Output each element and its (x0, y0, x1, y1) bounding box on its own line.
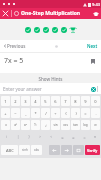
button[interactable]: − (11, 108, 20, 118)
staticText: | (17, 135, 19, 139)
staticText: a² (14, 123, 17, 127)
button[interactable] (25, 27, 31, 33)
button[interactable] (34, 27, 40, 33)
button[interactable]: tan (71, 120, 80, 130)
staticText: Previous (7, 43, 26, 49)
button[interactable]: ( (61, 108, 70, 118)
button[interactable]: + (1, 108, 10, 118)
button[interactable]: 9 (81, 96, 90, 106)
button[interactable]: Move right (61, 145, 72, 155)
staticText: = (84, 111, 87, 116)
button[interactable]: Move left (49, 145, 60, 155)
button[interactable]: One-Step Multiplication (14, 10, 90, 17)
staticText: 3 (24, 99, 27, 104)
button[interactable] (69, 26, 77, 34)
staticText: / (45, 111, 47, 116)
button[interactable]: Backspace (73, 145, 84, 155)
button[interactable]: Verify (85, 145, 100, 155)
button[interactable]: 0 (91, 96, 100, 106)
button[interactable]: ÷ (51, 108, 60, 118)
button[interactable]: = (81, 108, 90, 118)
button[interactable]: Report a problem (90, 8, 101, 19)
staticText: > (39, 135, 41, 139)
staticText: ÷ (54, 111, 57, 116)
button[interactable]: } (24, 132, 34, 142)
staticText: 4 (34, 99, 37, 104)
staticText: xʸ (94, 123, 97, 127)
button[interactable]: x (1, 120, 10, 130)
staticText: 5 (44, 99, 47, 104)
button[interactable]: Next (87, 43, 98, 49)
staticText: 7 (64, 99, 67, 104)
button[interactable]: Bookmark (88, 57, 97, 66)
button[interactable]: aᵇ (21, 120, 30, 130)
button[interactable]: 1 (1, 96, 10, 106)
button[interactable]: log (81, 120, 90, 130)
staticText: ½ (34, 123, 37, 127)
button[interactable]: i (1, 132, 12, 142)
staticText: ≤ (61, 136, 64, 139)
button[interactable]: 6 (51, 96, 60, 106)
button[interactable]: sinh (19, 145, 30, 155)
button[interactable]: √ (41, 120, 50, 130)
staticText: One-Step Multiplication (21, 10, 81, 17)
button[interactable]: 8 (71, 96, 80, 106)
button[interactable]: | (13, 132, 23, 142)
staticText: aᵇ (24, 123, 27, 127)
staticText: ) (75, 111, 77, 116)
staticText: abs (34, 148, 39, 152)
staticText: − (14, 111, 17, 116)
staticText: } (28, 135, 30, 139)
staticText: Show Hints (38, 76, 63, 82)
button[interactable]: Previous (3, 43, 26, 49)
staticText: 1 (4, 99, 7, 104)
button[interactable]: > (35, 132, 45, 142)
staticText: ≥ (72, 136, 75, 139)
staticText: 0 (94, 99, 97, 104)
staticText: ( (65, 111, 67, 116)
button[interactable]: abs (31, 145, 42, 155)
staticText: cos (63, 123, 68, 127)
button[interactable]: ≤ (57, 132, 67, 142)
staticText: 9:43 (92, 2, 100, 7)
button[interactable]: ABC (1, 145, 18, 155)
button[interactable]: * (31, 108, 40, 118)
staticText: 2 (14, 99, 17, 104)
staticText: Next (87, 43, 98, 49)
button[interactable]: Clear (89, 85, 97, 93)
button[interactable] (52, 27, 58, 33)
staticText: sin (53, 123, 58, 127)
staticText: 6 (54, 99, 57, 104)
button[interactable]: 7 (61, 96, 70, 106)
staticText: √ (45, 124, 47, 127)
button[interactable]: ) (71, 108, 80, 118)
button[interactable]: xʸ (91, 120, 100, 130)
button[interactable]: < (46, 132, 56, 142)
staticText: 7x = 5 (4, 56, 24, 66)
button[interactable]: ≥ (68, 132, 78, 142)
button[interactable]: Show Hints (38, 76, 63, 82)
staticText: Verify (87, 148, 98, 153)
button[interactable]: 2 (11, 96, 20, 106)
staticText: . (95, 111, 97, 116)
button[interactable]: , (21, 108, 30, 118)
button[interactable]: π (90, 132, 100, 142)
button[interactable]: cos (61, 120, 70, 130)
button[interactable] (43, 27, 49, 33)
button[interactable]: 5 (41, 96, 50, 106)
button[interactable]: Close (0, 8, 11, 19)
staticText: sinh (22, 148, 28, 152)
staticText: ∞ (83, 136, 86, 139)
button[interactable]: / (41, 108, 50, 118)
button[interactable]: a² (11, 120, 20, 130)
staticText: , (25, 111, 27, 116)
staticText: 8 (74, 99, 77, 104)
button[interactable]: ∞ (79, 132, 89, 142)
button[interactable]: sin (51, 120, 60, 130)
button[interactable] (61, 27, 67, 33)
button[interactable]: 3 (21, 96, 30, 106)
staticText: < (50, 135, 52, 139)
button[interactable]: 4 (31, 96, 40, 106)
button[interactable]: ½ (31, 120, 40, 130)
